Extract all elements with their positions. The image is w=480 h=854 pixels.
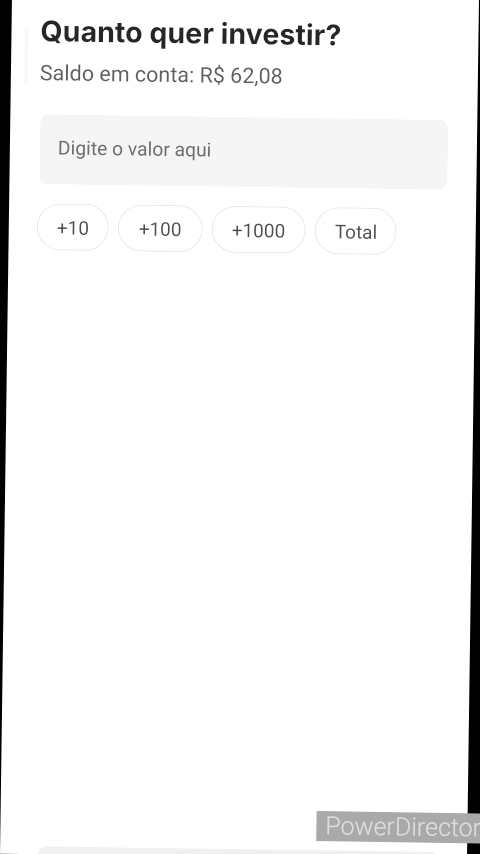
staticText: Total <box>335 220 378 243</box>
button[interactable]: +100 <box>117 204 203 252</box>
staticText: Quanto quer investir? <box>40 13 342 52</box>
button[interactable]: Digite o valor aqui <box>39 114 448 190</box>
staticText: Saldo em conta: R$ 62,08 <box>40 60 283 89</box>
button[interactable]: +1000 <box>211 206 306 254</box>
staticText: Digite o valor aqui <box>58 136 212 161</box>
staticText: PowerDirector <box>325 811 480 842</box>
button[interactable]: +10 <box>36 203 109 251</box>
button[interactable]: Total <box>314 207 397 255</box>
staticText: +100 <box>139 218 182 240</box>
staticText: +1000 <box>232 219 286 242</box>
staticText: +10 <box>57 216 90 239</box>
